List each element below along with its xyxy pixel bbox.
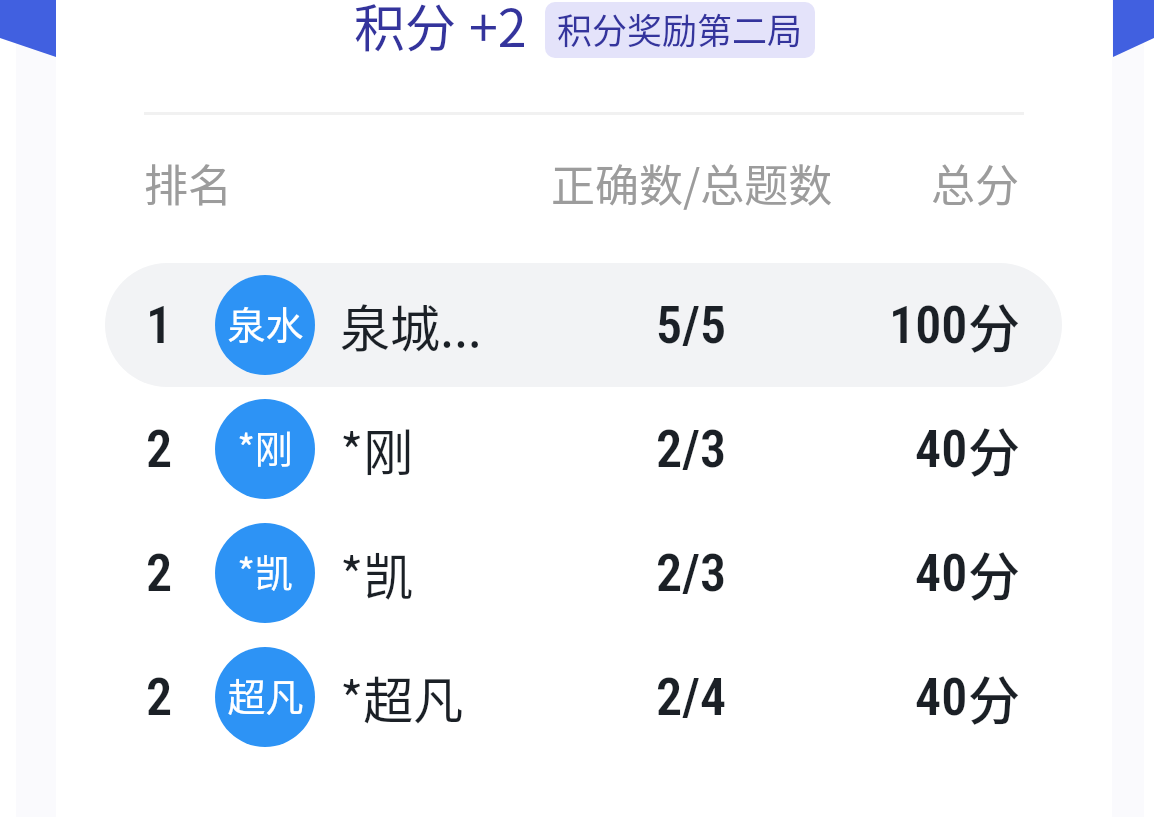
- staticText: 积分: [354, 0, 457, 58]
- staticText: 40: [915, 419, 968, 480]
- staticText: +2: [469, 0, 527, 57]
- staticText: *凯: [237, 543, 293, 598]
- button[interactable]: 2: [105, 635, 1062, 759]
- staticText: 2/4: [656, 667, 727, 728]
- staticText: 2: [146, 543, 173, 604]
- staticText: 排名: [144, 151, 232, 215]
- staticText: *超凡: [340, 661, 464, 733]
- staticText: 分: [968, 288, 1021, 363]
- staticText: 2/3: [656, 419, 727, 480]
- staticText: *刚: [340, 413, 414, 485]
- button[interactable]: 2: [105, 511, 1062, 635]
- staticText: 正确数/总题数: [551, 151, 833, 215]
- staticText: 总分: [931, 151, 1019, 215]
- staticText: 40: [915, 667, 968, 728]
- staticText: 2/3: [656, 543, 727, 604]
- staticText: *刚: [237, 419, 293, 474]
- staticText: 超凡: [227, 667, 304, 722]
- button[interactable]: 积分奖励第二局: [545, 2, 815, 58]
- button[interactable]: 2: [105, 387, 1062, 511]
- staticText: 泉城...: [340, 289, 482, 361]
- staticText: 分: [968, 536, 1021, 611]
- staticText: 分: [968, 660, 1021, 735]
- staticText: 2: [146, 667, 173, 728]
- staticText: 泉水: [227, 295, 304, 350]
- staticText: 5/5: [656, 295, 727, 356]
- staticText: 分: [968, 412, 1021, 487]
- staticText: *凯: [340, 537, 414, 609]
- staticText: 积分奖励第二局: [557, 3, 803, 54]
- staticText: 1: [146, 295, 173, 356]
- staticText: 2: [146, 419, 173, 480]
- button[interactable]: 1: [105, 263, 1062, 387]
- staticText: 40: [915, 543, 968, 604]
- staticText: 100: [889, 295, 968, 356]
